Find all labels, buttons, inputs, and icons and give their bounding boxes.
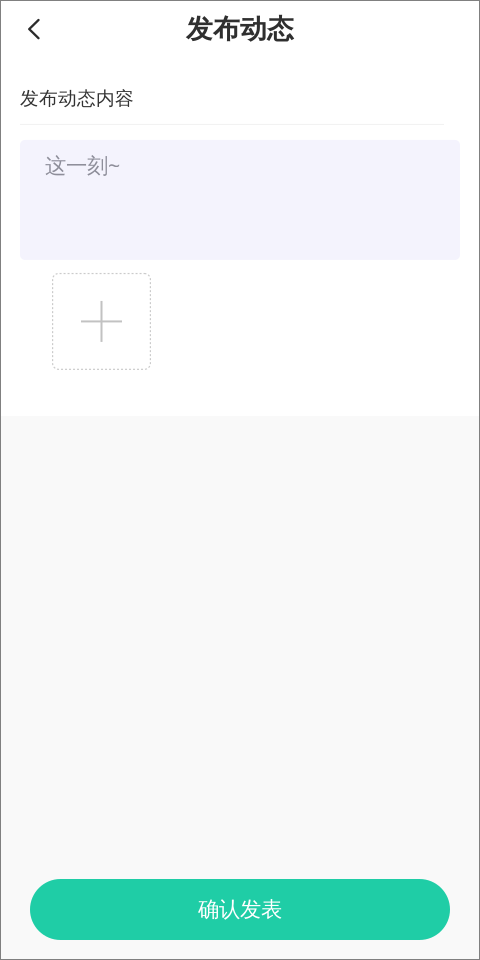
button[interactable]: Back (0, 1, 58, 57)
staticText: 发布动态 (186, 13, 294, 45)
staticText: 确认发表 (198, 896, 282, 923)
button[interactable]: Add photo (52, 273, 151, 370)
button[interactable]: 确认发表 (30, 879, 450, 940)
button[interactable]: 这一刻~ (20, 140, 460, 260)
staticText: 发布动态内容 (20, 87, 134, 110)
staticText: 这一刻~ (45, 151, 120, 179)
